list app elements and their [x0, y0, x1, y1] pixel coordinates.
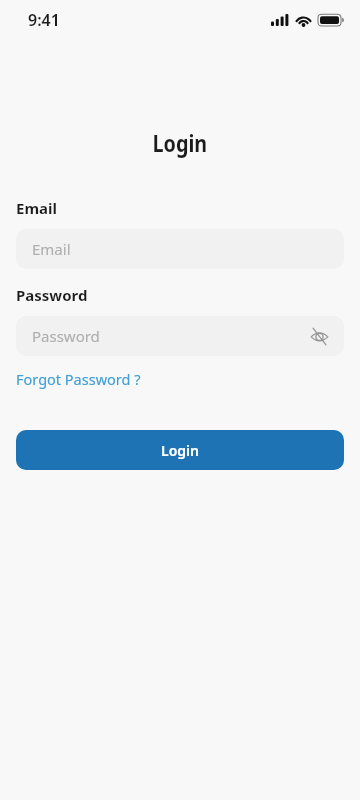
staticText: Email	[32, 239, 71, 259]
button[interactable]: Password	[16, 316, 344, 356]
staticText: Email	[16, 198, 57, 218]
button[interactable]	[310, 327, 329, 346]
button[interactable]: Forgot Password ?	[16, 369, 141, 389]
staticText: Password	[32, 326, 310, 346]
button[interactable]: Email	[16, 229, 344, 269]
button[interactable]: Login	[16, 430, 344, 470]
staticText: Login	[161, 441, 199, 460]
staticText: Login	[152, 127, 207, 158]
staticText: 9:41	[28, 9, 60, 31]
staticText: Password	[16, 285, 88, 305]
